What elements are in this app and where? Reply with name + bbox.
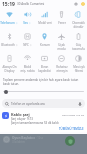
button[interactable]: Kablo şarj [0, 110, 87, 126]
staticText: Otomatik döndür [72, 21, 85, 29]
button[interactable]: NFC [18, 33, 36, 47]
button[interactable]: Mobil veri [36, 11, 53, 25]
staticText: Kablo şarj [11, 112, 30, 117]
button[interactable]: Güç tasarrufu [70, 33, 87, 51]
button[interactable]: Always On Display [0, 55, 18, 73]
staticText: Uçak modu [57, 43, 66, 51]
staticText: Şarj oluyor %73 [11, 117, 33, 121]
staticText: Şarjın tamamlanmasına 53 dk kaldı [11, 121, 59, 125]
staticText: Mobil veri [38, 21, 52, 25]
button[interactable]: Mobil eriş. nokta [18, 55, 36, 73]
button[interactable]: Otomatik döndür [70, 11, 87, 29]
button[interactable]: Uçak modu [53, 33, 70, 51]
button[interactable]: Fener [53, 11, 70, 25]
staticText: Telefonum [0, 21, 15, 25]
staticText: · 12sa [36, 136, 44, 140]
staticText: TÜMÜNÜ TEMİZLE [59, 127, 84, 131]
staticText: Oyun Başlatıcı [12, 136, 35, 140]
staticText: Telefon ve ayarlarda ara [11, 102, 45, 106]
button[interactable]: Bluetooth [0, 33, 18, 47]
button[interactable]: TÜMÜNÜ TEMİZLE [58, 126, 85, 132]
button[interactable]: Konum [36, 33, 53, 47]
staticText: 15:19 [2, 1, 15, 8]
button[interactable]: Oyun Başlatıcı [0, 136, 87, 144]
staticText: Fener [58, 21, 66, 25]
button[interactable]: Ekran kaydedici [36, 55, 53, 73]
staticText: 3 bildirim [12, 140, 25, 144]
staticText: Toplam pencere aralamak için bir hızlı a… [3, 78, 79, 86]
staticText: Güç tasarrufu [72, 43, 85, 51]
staticText: Ses [23, 21, 28, 25]
button[interactable]: Telefon ve ayarlarda ara [2, 99, 85, 108]
staticText: Bluetooth [1, 43, 15, 47]
button[interactable]: Record [65, 136, 75, 146]
button[interactable]: Rahatsız etmeyin [53, 55, 70, 73]
staticText: Data usage 778 KB [62, 113, 85, 116]
staticText: Always On Display [2, 65, 17, 73]
button[interactable]: Mavi ışık filtresi [70, 55, 87, 73]
staticText: 30 Aralık Cumartesi [17, 2, 45, 6]
staticText: Mavi ışık filtresi [73, 65, 85, 73]
staticText: Ekran kaydedici [38, 65, 51, 73]
button[interactable]: Ses [18, 11, 36, 25]
staticText: Konum [40, 43, 50, 47]
button[interactable]: Telefonum [0, 11, 18, 25]
staticText: Mobil eriş. nokta [20, 65, 35, 73]
staticText: Rahatsız etmeyin [56, 65, 68, 73]
staticText: NFC [23, 43, 29, 47]
